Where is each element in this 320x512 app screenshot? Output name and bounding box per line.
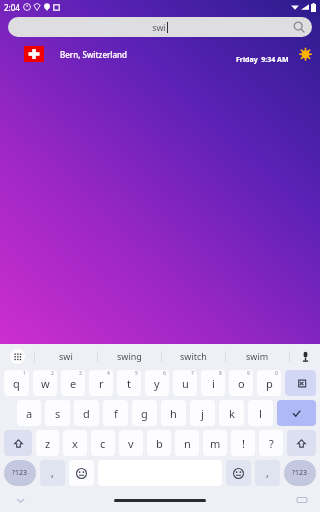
button[interactable]: l <box>248 400 273 426</box>
button[interactable]: swing <box>98 344 161 368</box>
button[interactable]: Hide keyboard <box>12 492 28 508</box>
button[interactable]: ?123 <box>284 460 316 486</box>
staticText: r <box>99 376 104 391</box>
staticText: 7 <box>191 370 194 377</box>
staticText: ?123 <box>12 468 28 478</box>
button[interactable]: , <box>40 460 65 486</box>
staticText: l <box>259 406 262 421</box>
button[interactable]: u <box>173 370 197 396</box>
staticText: swing <box>117 350 142 362</box>
button[interactable]: switch <box>162 344 225 368</box>
staticText: y <box>154 376 160 391</box>
button[interactable]: Shift <box>4 430 32 456</box>
staticText: b <box>156 436 163 451</box>
button[interactable]: c <box>91 430 115 456</box>
button[interactable]: e <box>61 370 85 396</box>
button[interactable]: ?123 <box>4 460 36 486</box>
button[interactable]: r <box>89 370 113 396</box>
button[interactable]: f <box>103 400 128 426</box>
staticText: x <box>72 436 78 451</box>
staticText: 0 <box>275 370 278 377</box>
button[interactable]: q <box>4 370 29 396</box>
staticText: h <box>170 406 177 421</box>
staticText: swim <box>246 350 269 362</box>
staticText: swi <box>152 21 166 33</box>
button[interactable]: g <box>132 400 157 426</box>
button[interactable]: ! <box>231 430 255 456</box>
staticText: 2:04 <box>4 2 20 13</box>
staticText: t <box>127 376 131 391</box>
staticText: o <box>238 376 245 391</box>
button[interactable]: o <box>229 370 253 396</box>
button[interactable]: n <box>175 430 199 456</box>
button[interactable]: Switch keyboard <box>294 492 310 508</box>
staticText: , <box>266 466 269 480</box>
button[interactable]: Search <box>293 21 305 33</box>
staticText: i <box>212 376 215 391</box>
button[interactable]: swi <box>35 344 97 368</box>
staticText: v <box>128 436 134 451</box>
button[interactable]: d <box>74 400 99 426</box>
staticText: p <box>266 376 273 391</box>
staticText: Friday 9:34 AM <box>236 55 289 65</box>
staticText: d <box>83 406 90 421</box>
staticText: u <box>182 376 189 391</box>
staticText: swi <box>59 350 73 362</box>
button[interactable]: ? <box>259 430 283 456</box>
button[interactable]: Apps <box>0 344 34 368</box>
staticText: f <box>114 406 118 421</box>
staticText: e <box>70 376 77 391</box>
staticText: c <box>100 436 106 451</box>
staticText: 9 <box>247 370 250 377</box>
button[interactable]: z <box>36 430 59 456</box>
button[interactable]: y <box>145 370 169 396</box>
staticText: k <box>229 406 235 421</box>
staticText: j <box>201 406 204 421</box>
staticText: 1 <box>23 370 26 377</box>
button[interactable]: x <box>63 430 87 456</box>
staticText: ?123 <box>292 468 308 478</box>
button[interactable]: m <box>203 430 227 456</box>
staticText: m <box>210 436 221 451</box>
staticText: 8 <box>219 370 222 377</box>
staticText: 4 <box>107 370 110 377</box>
staticText: Bern, Switzerland <box>60 49 128 60</box>
staticText: 2 <box>51 370 54 377</box>
staticText: 5 <box>135 370 138 377</box>
button[interactable]: b <box>147 430 171 456</box>
button[interactable]: k <box>219 400 244 426</box>
staticText: ! <box>242 436 245 451</box>
button[interactable]: Bern, Switzerland <box>0 40 320 68</box>
button[interactable]: a <box>17 400 41 426</box>
staticText: 3 <box>79 370 82 377</box>
staticText: , <box>51 466 54 480</box>
button[interactable]: Emoji <box>69 460 94 486</box>
button[interactable]: Emoji <box>226 460 251 486</box>
button[interactable]: p <box>257 370 281 396</box>
staticText: z <box>45 436 51 451</box>
button[interactable]: swim <box>226 344 289 368</box>
staticText: switch <box>180 350 207 362</box>
button[interactable]: Backspace <box>285 370 316 396</box>
button[interactable]: t <box>117 370 141 396</box>
button[interactable]: v <box>119 430 143 456</box>
button[interactable]: Shift <box>287 430 316 456</box>
button[interactable]: j <box>190 400 215 426</box>
button[interactable]: , <box>255 460 280 486</box>
staticText: g <box>141 406 148 421</box>
staticText: s <box>55 406 61 421</box>
button[interactable]: s <box>45 400 70 426</box>
staticText: n <box>184 436 191 451</box>
staticText: 6 <box>163 370 166 377</box>
button[interactable]: Enter <box>277 400 316 426</box>
staticText: q <box>13 376 20 391</box>
staticText: w <box>41 376 50 391</box>
button[interactable]: i <box>201 370 225 396</box>
button[interactable]: Voice input <box>290 344 320 368</box>
button[interactable]: h <box>161 400 186 426</box>
staticText: a <box>26 406 33 421</box>
staticText: ? <box>269 436 274 451</box>
button[interactable]: w <box>33 370 57 396</box>
button[interactable]: swi <box>8 17 312 37</box>
